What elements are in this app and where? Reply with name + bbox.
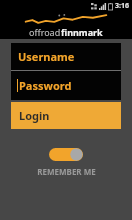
staticText: REMEMBER ME xyxy=(37,166,96,177)
button[interactable]: Username xyxy=(11,43,121,70)
staticText: finnmark xyxy=(61,26,103,38)
button[interactable]: Password xyxy=(11,71,121,100)
staticText: 3:16 xyxy=(115,1,129,11)
button[interactable]: Login xyxy=(11,102,121,129)
staticText: offroad xyxy=(29,26,61,38)
staticText: Login xyxy=(19,108,50,123)
staticText: Password xyxy=(19,78,72,93)
button[interactable]: Remember me toggle, on xyxy=(49,148,83,161)
staticText: Username xyxy=(18,49,75,64)
